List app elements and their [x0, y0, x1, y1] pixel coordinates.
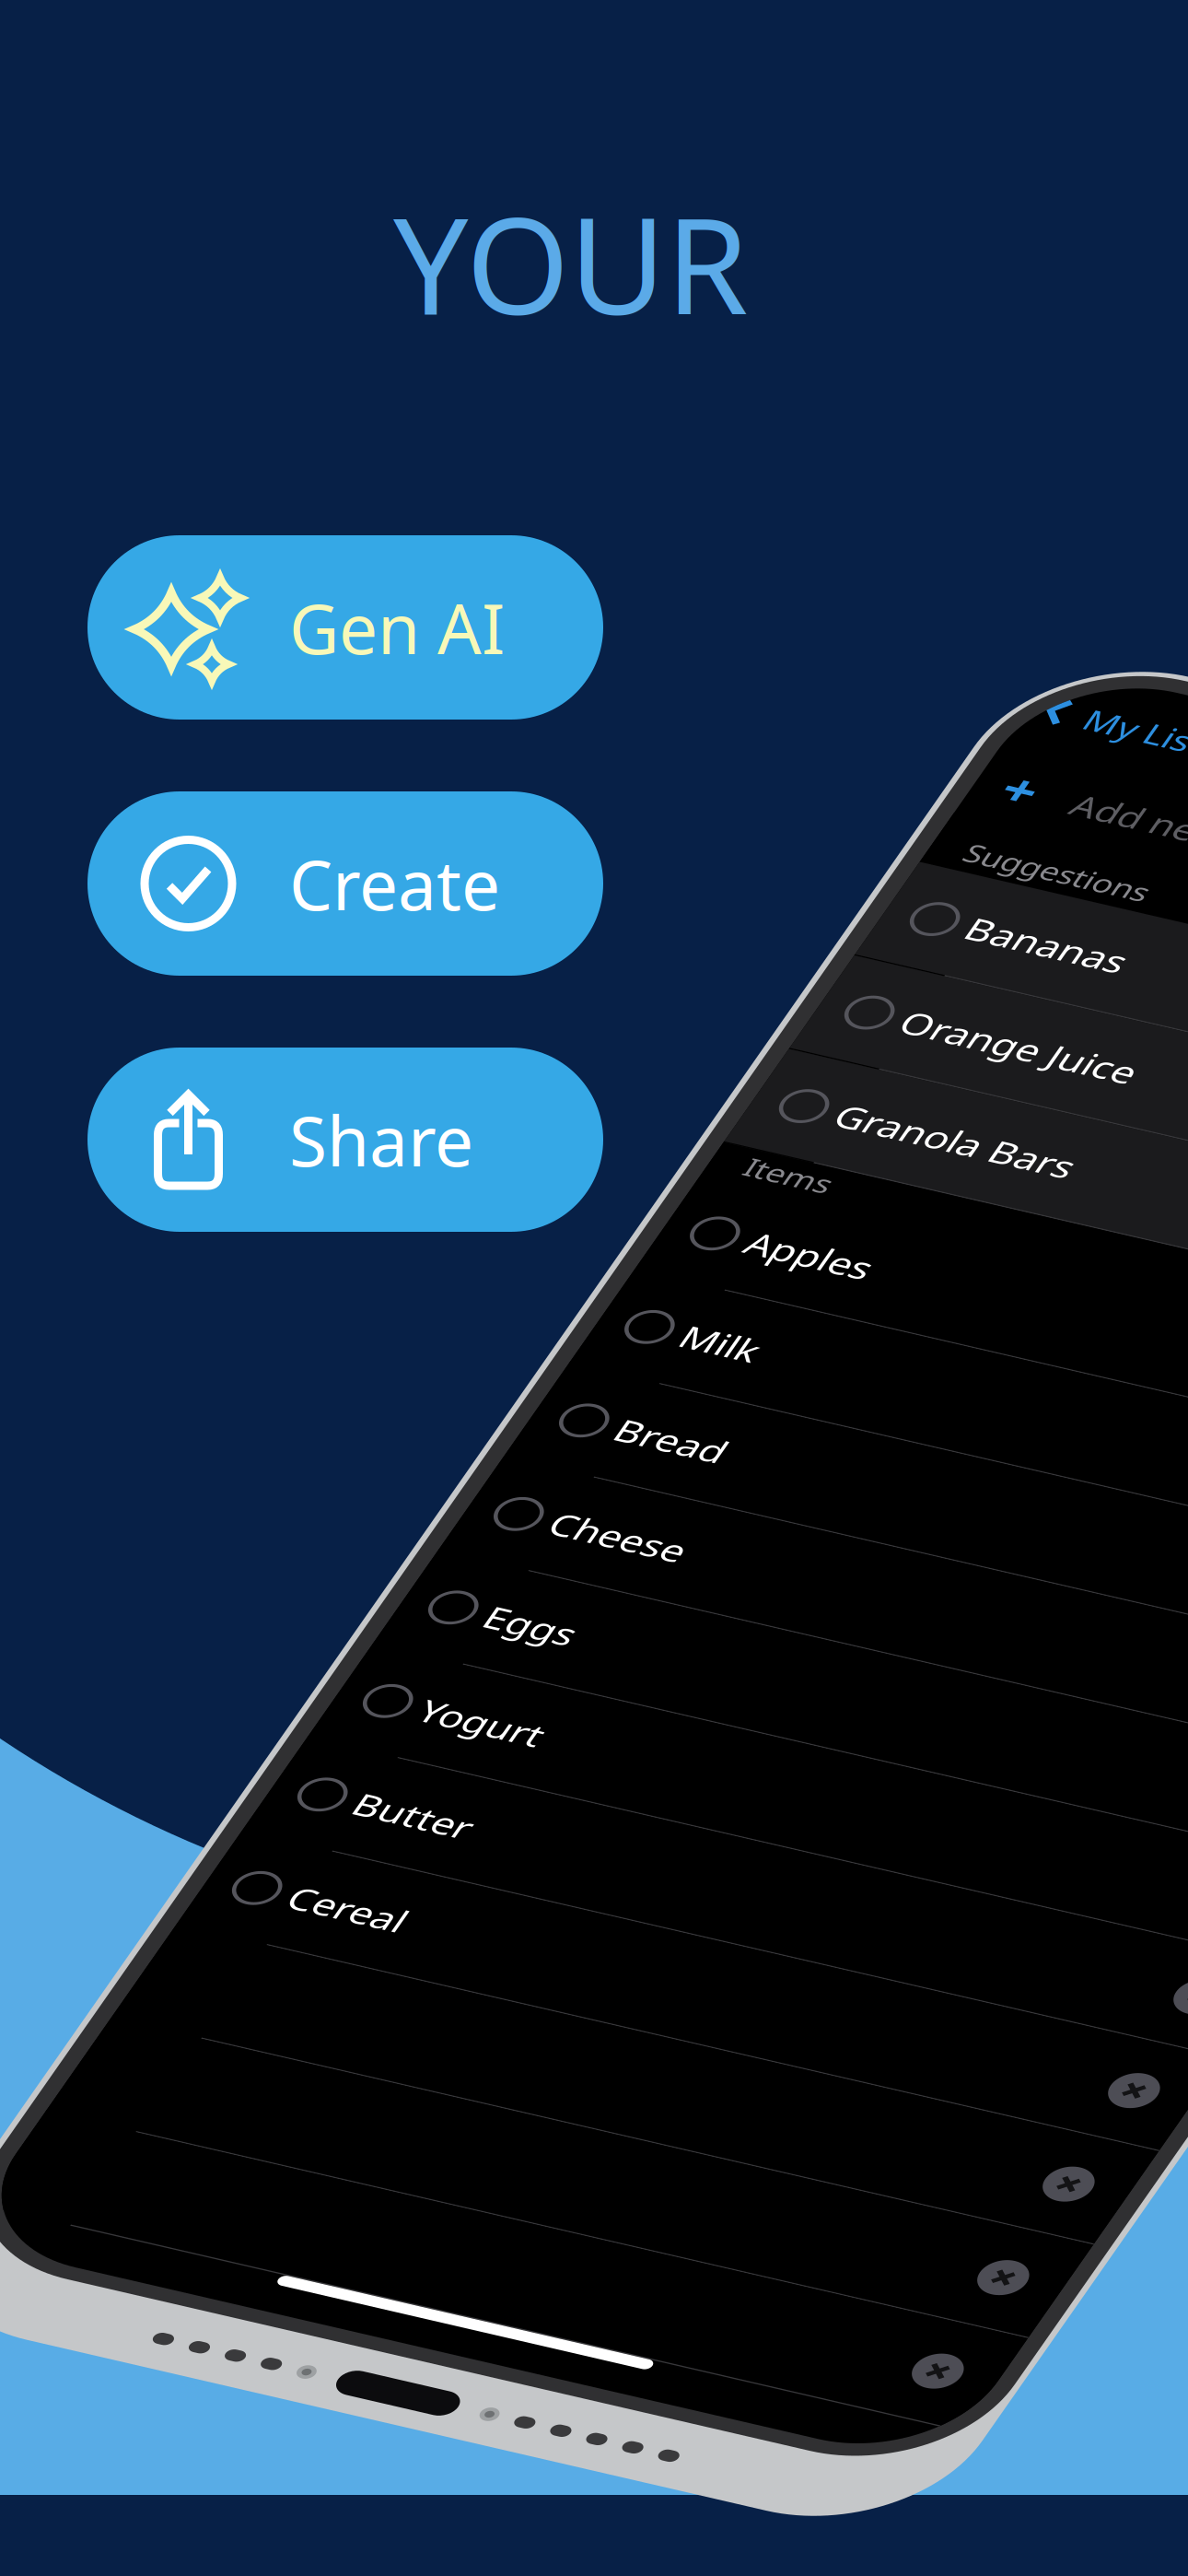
staticText: Suggestions — [1115, 951, 1188, 1003]
staticText: Cheese — [1173, 2076, 1188, 2140]
staticText: Orange Juice — [1173, 1216, 1188, 1280]
staticText: Gen AI — [289, 582, 505, 673]
staticText: Items — [1115, 1490, 1188, 1542]
button[interactable]: Create — [87, 791, 603, 976]
staticText: Apples — [1173, 1595, 1188, 1659]
button[interactable]: My Lists — [1074, 710, 1188, 769]
button[interactable]: Add item — [1074, 849, 1147, 890]
staticText: Bread — [1173, 1916, 1188, 1979]
staticText: My Lists — [1144, 710, 1188, 769]
staticText: Granola Bars — [1173, 1377, 1188, 1440]
staticText: Create — [289, 838, 500, 929]
staticText: Share — [289, 1094, 473, 1185]
button[interactable]: Gen AI — [87, 535, 603, 720]
staticText: YOUR — [393, 175, 749, 351]
button[interactable]: Share — [87, 1048, 603, 1232]
